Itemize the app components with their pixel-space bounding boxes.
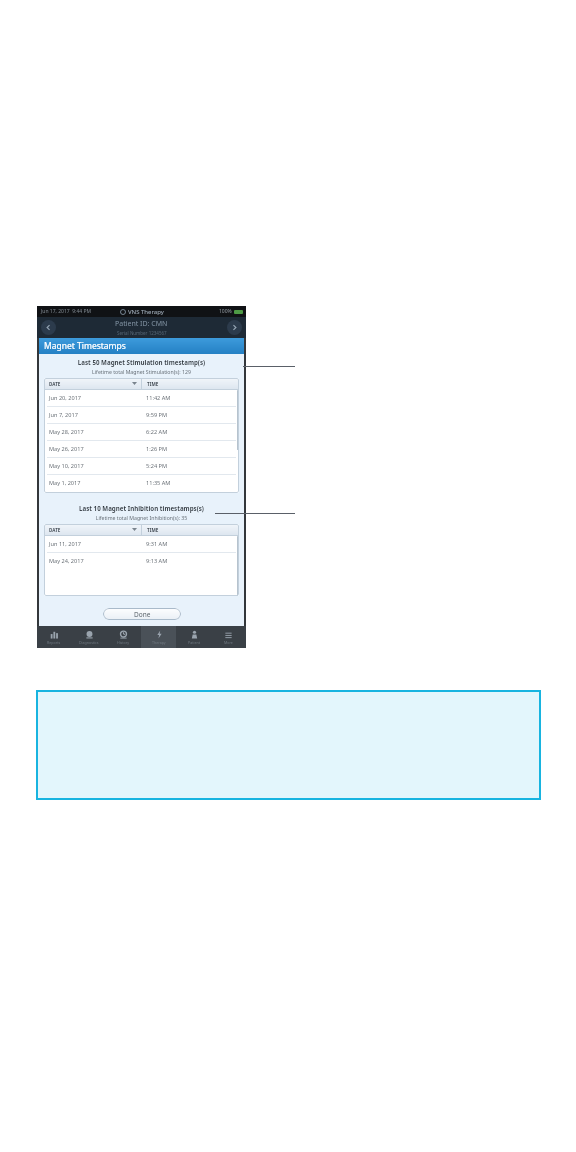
staticText: 9:13 AM: [146, 557, 239, 565]
staticText: 9:59 PM: [146, 411, 239, 419]
staticText: 11:35 AM: [146, 479, 239, 487]
staticText: Jun 11, 2017: [49, 540, 141, 548]
button[interactable]: More: [211, 626, 246, 648]
staticText: Jun 20, 2017: [49, 394, 141, 402]
button[interactable]: Previous: [41, 320, 56, 335]
staticText: Reports: [47, 640, 61, 645]
staticText: Lifetime total Magnet Inhibition(s): 35: [39, 514, 244, 521]
button[interactable]: May 1, 2017: [44, 475, 239, 491]
button[interactable]: DATE: [44, 524, 141, 535]
button[interactable]: Patient: [176, 626, 211, 648]
staticText: More: [224, 640, 233, 645]
button[interactable]: TIME: [142, 524, 239, 535]
staticText: 6:22 AM: [146, 428, 239, 436]
button[interactable]: May 26, 2017: [44, 441, 239, 457]
button[interactable]: May 24, 2017: [44, 553, 239, 569]
button[interactable]: Jun 7, 2017: [44, 407, 239, 423]
staticText: 100%: [219, 308, 232, 315]
button[interactable]: Next: [227, 320, 242, 335]
staticText: VNS Therapy: [128, 308, 164, 316]
staticText: 1:26 PM: [146, 445, 239, 453]
button[interactable]: Therapy: [141, 626, 176, 648]
button[interactable]: Reports: [37, 626, 71, 648]
staticText: Therapy: [152, 640, 166, 645]
staticText: DATE: [49, 381, 61, 387]
staticText: Patient ID: CMN: [115, 319, 168, 329]
staticText: May 24, 2017: [49, 557, 141, 565]
button[interactable]: May 28, 2017: [44, 424, 239, 440]
staticText: Lifetime total Magnet Stimulation(s): 12…: [39, 368, 244, 375]
staticText: 11:42 AM: [146, 394, 239, 402]
staticText: TIME: [147, 381, 159, 387]
staticText: TIME: [147, 527, 159, 533]
staticText: 5:24 PM: [146, 462, 239, 470]
staticText: Jun 7, 2017: [49, 411, 141, 419]
button[interactable]: May 10, 2017: [44, 458, 239, 474]
staticText: Diagnostics: [79, 640, 99, 645]
button[interactable]: TIME: [142, 378, 239, 389]
button[interactable]: Jun 11, 2017: [44, 536, 239, 552]
staticText: May 26, 2017: [49, 445, 141, 453]
button[interactable]: Jun 20, 2017: [44, 390, 239, 406]
staticText: 9:31 AM: [146, 540, 239, 548]
button[interactable]: DATE: [44, 378, 141, 389]
staticText: DATE: [49, 527, 61, 533]
staticText: History: [117, 640, 130, 645]
staticText: May 10, 2017: [49, 462, 141, 470]
staticText: Patient: [188, 640, 200, 645]
staticText: Magnet Timestamps: [44, 340, 126, 352]
button[interactable]: Diagnostics: [71, 626, 106, 648]
staticText: May 1, 2017: [49, 479, 141, 487]
staticText: Last 10 Magnet Inhibition timestamps(s): [39, 504, 244, 512]
staticText: Done: [134, 610, 151, 619]
staticText: Last 50 Magnet Stimulation timestamp(s): [39, 358, 244, 366]
button[interactable]: History: [106, 626, 141, 648]
staticText: May 28, 2017: [49, 428, 141, 436]
staticText: Serial Number 1234567: [117, 330, 167, 336]
staticText: Jun 17, 2017 9:44 PM: [41, 308, 92, 315]
button[interactable]: Done: [103, 608, 181, 620]
